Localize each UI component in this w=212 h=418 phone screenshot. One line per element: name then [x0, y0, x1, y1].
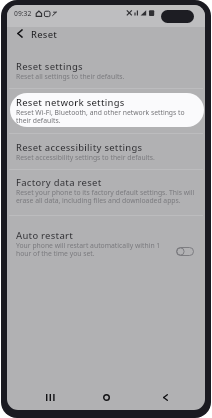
staticText: Reset accessibility settings to their de…	[16, 154, 155, 162]
staticText: Reset your phone to its factory default …	[16, 189, 198, 205]
button[interactable]: Auto restart	[7, 215, 205, 265]
staticText: Auto restart	[16, 229, 74, 242]
staticText: Reset network settings	[16, 96, 125, 109]
staticText: 09:32	[14, 9, 32, 18]
staticText: Your phone will restart automatically wi…	[16, 242, 168, 258]
button[interactable]: Home	[86, 386, 126, 408]
staticText: Reset accessibility settings	[16, 141, 143, 154]
button[interactable]: Reset settings	[7, 51, 205, 88]
button[interactable]: Navigate up	[10, 23, 30, 43]
staticText: Reset	[31, 28, 58, 41]
staticText: Reset all settings to their defaults.	[16, 73, 125, 81]
button[interactable]: Reset network settings	[7, 88, 205, 133]
button[interactable]: Back	[145, 386, 185, 408]
staticText: Reset settings	[16, 60, 83, 73]
button[interactable]: Auto restart switch	[172, 243, 198, 259]
button[interactable]: Recent apps	[30, 386, 70, 408]
staticText: Factory data reset	[16, 176, 102, 189]
staticText: Reset Wi-Fi, Bluetooth, and other networ…	[16, 109, 198, 125]
button[interactable]: Factory data reset	[7, 169, 205, 215]
button[interactable]: Reset accessibility settings	[7, 133, 205, 169]
